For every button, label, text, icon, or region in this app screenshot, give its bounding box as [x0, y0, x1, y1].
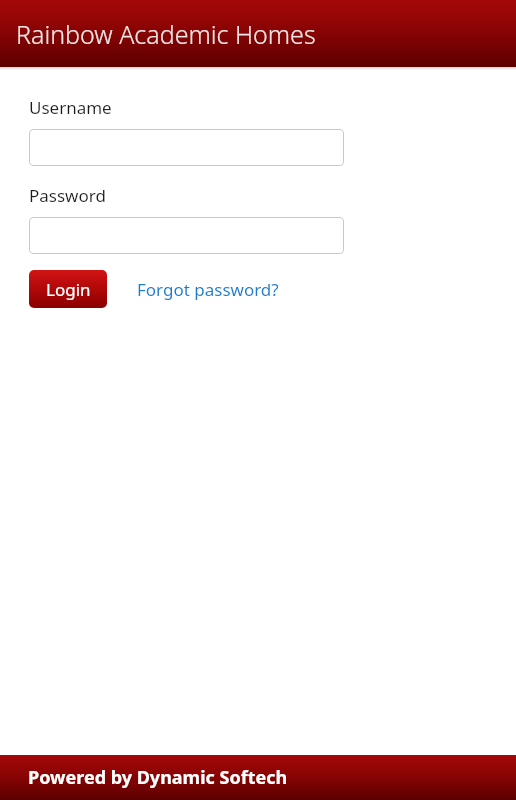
staticText: Powered by Dynamic Softech: [28, 765, 288, 790]
button[interactable]: Username input: [29, 129, 344, 166]
staticText: Username: [29, 96, 112, 119]
button[interactable]: Login: [29, 270, 107, 308]
staticText: Password: [29, 184, 106, 207]
button[interactable]: Password input: [29, 217, 344, 254]
button[interactable]: Forgot password?: [137, 273, 279, 306]
staticText: Login: [46, 278, 91, 301]
staticText: Forgot password?: [137, 278, 279, 301]
staticText: Rainbow Academic Homes: [16, 17, 316, 51]
